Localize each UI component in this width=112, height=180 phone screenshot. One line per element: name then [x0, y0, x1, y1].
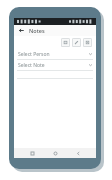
staticText: Notes — [29, 27, 45, 34]
button[interactable]: Add — [61, 38, 70, 47]
button[interactable]: Select Person — [14, 49, 96, 60]
button[interactable]: Back — [73, 148, 83, 158]
button[interactable]: Back — [17, 26, 26, 35]
staticText: Select Note — [18, 62, 89, 69]
button[interactable]: Delete — [83, 38, 92, 47]
staticText: Select Person — [18, 51, 89, 58]
button[interactable]: Edit — [72, 38, 81, 47]
button[interactable]: Recents — [27, 148, 37, 158]
button[interactable]: Select Note — [14, 60, 96, 71]
button[interactable]: Home — [50, 148, 60, 158]
